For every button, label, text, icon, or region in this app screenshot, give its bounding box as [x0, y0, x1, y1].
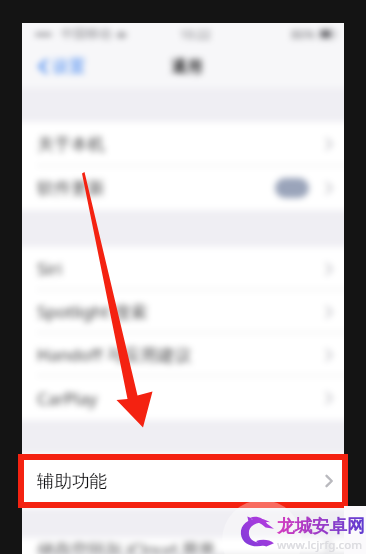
staticText: 龙城安卓网 — [277, 515, 365, 537]
staticText: 关于本机 — [37, 134, 105, 155]
button[interactable]: 关于本机 — [22, 122, 344, 166]
staticText: CarPlay — [37, 387, 98, 410]
staticText: 辅助功能 — [37, 470, 107, 492]
button[interactable]: Spotlight 搜索 — [22, 290, 344, 333]
staticText: Spotlight 搜索 — [37, 300, 148, 323]
button[interactable]: CarPlay — [22, 376, 344, 420]
button[interactable]: 设置 — [35, 51, 88, 82]
button[interactable]: 辅助功能 — [22, 454, 344, 508]
staticText: 10:22 — [180, 26, 211, 42]
staticText: 软件更新 — [37, 178, 105, 199]
staticText: Handoff 与应用建议 — [37, 343, 192, 366]
button[interactable]: Siri — [22, 247, 344, 290]
staticText: 中国移动 — [61, 26, 111, 42]
staticText: 86% — [291, 26, 315, 42]
button[interactable]: 辅助功能 — [22, 454, 344, 508]
button[interactable]: Handoff 与应用建议 — [22, 333, 344, 376]
staticText: 通用 — [171, 57, 202, 77]
staticText: 设置 — [52, 56, 85, 77]
staticText: 辅助功能 — [37, 471, 105, 492]
staticText: www.lcjrfg.com — [277, 537, 363, 553]
staticText: Siri — [37, 257, 63, 280]
button[interactable]: 储存空间与 iCloud 用量 — [22, 538, 344, 554]
staticText: 储存空间与 iCloud 用量 — [37, 538, 216, 554]
button[interactable]: 软件更新 — [22, 166, 344, 210]
